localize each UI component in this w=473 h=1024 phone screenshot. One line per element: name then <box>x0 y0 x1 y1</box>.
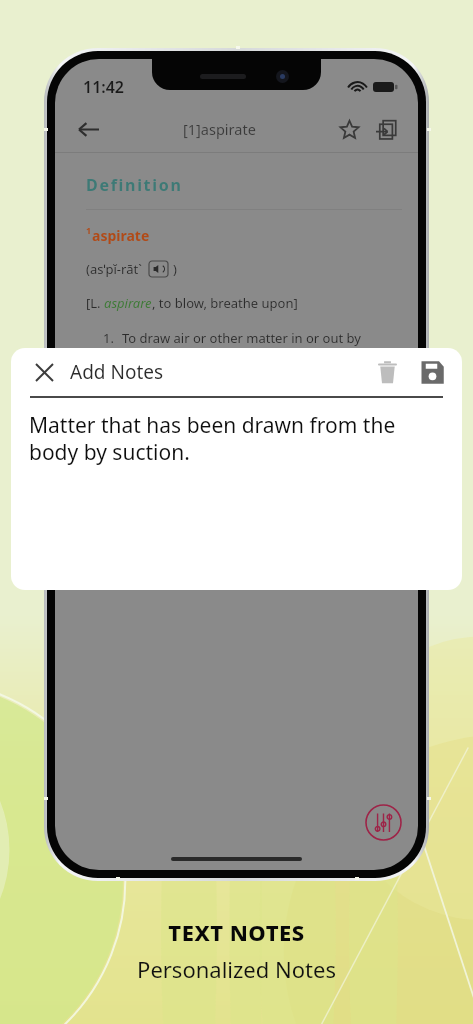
staticText: [1]aspirate <box>183 119 256 139</box>
staticText: Matter that has been drawn from the body… <box>29 411 444 466</box>
staticText: ) <box>173 260 177 278</box>
staticText: Definition <box>86 174 183 196</box>
staticText: To draw air or other matter in or out by… <box>122 329 402 365</box>
button[interactable]: Back <box>72 113 104 145</box>
button[interactable]: Pronounce <box>149 261 168 277</box>
button[interactable]: Adjust settings <box>365 804 402 841</box>
staticText: , to blow, breathe upon] <box>152 294 298 312</box>
staticText: Add Notes <box>70 359 164 385</box>
button[interactable]: Close <box>28 356 60 388</box>
staticText: Personalized Notes <box>137 954 336 984</box>
staticText: 1. <box>103 329 114 347</box>
button[interactable]: Favorite <box>334 114 364 144</box>
staticText: TEXT NOTES <box>168 917 305 947</box>
staticText: aspirate <box>92 226 150 245</box>
staticText: (asˈpĭ-rātˋ <box>86 260 142 278</box>
staticText: 1 <box>86 224 92 236</box>
button[interactable]: Open in new <box>371 114 401 144</box>
staticText: [L. <box>86 294 104 312</box>
staticText: 11:42 <box>83 76 125 98</box>
button[interactable]: Delete <box>368 353 406 391</box>
staticText: aspirare <box>104 294 152 312</box>
button[interactable]: Save <box>413 353 451 391</box>
